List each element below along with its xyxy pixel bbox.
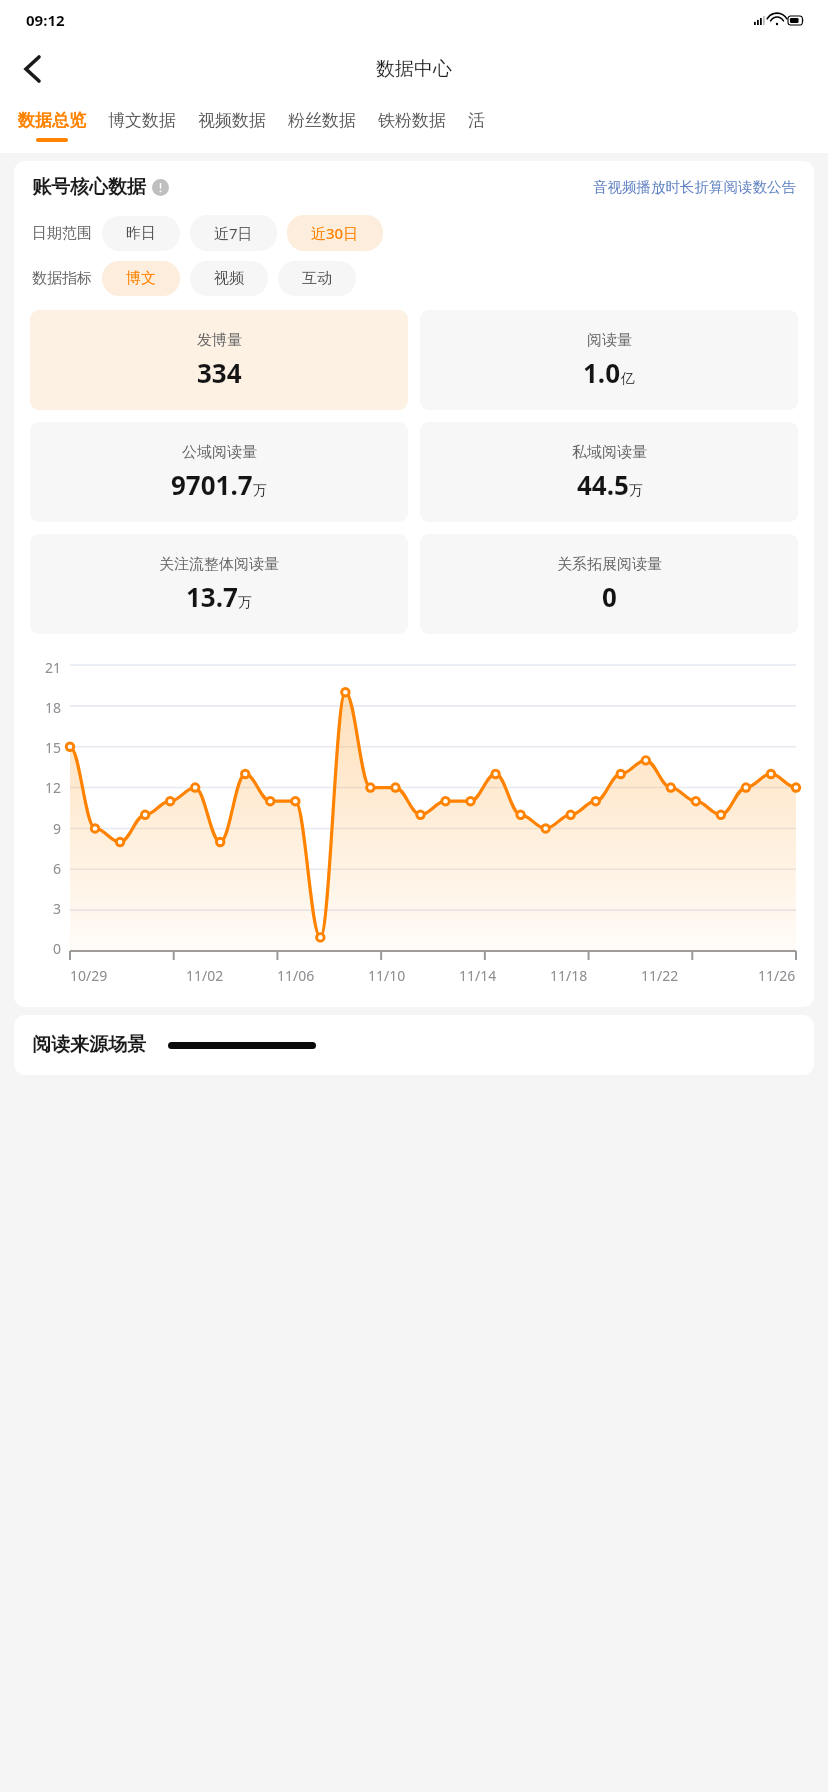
staticText: 亿 — [621, 370, 635, 388]
staticText: 阅读量 — [587, 331, 632, 350]
staticText: 日期范围 — [32, 224, 92, 243]
staticText: 9701.7 — [171, 467, 253, 502]
staticText: 发博量 — [197, 331, 242, 350]
staticText: 11/06 — [277, 966, 315, 985]
button[interactable]: 互动 — [278, 261, 356, 296]
staticText: 万 — [629, 482, 643, 500]
staticText: 视频数据 — [198, 110, 266, 131]
staticText: 11/26 — [758, 966, 796, 985]
button[interactable]: 活 — [468, 98, 485, 138]
staticText: 6 — [53, 859, 62, 878]
button[interactable]: 说明 — [152, 179, 169, 196]
staticText: 11/10 — [368, 966, 406, 985]
staticText: 博文数据 — [108, 110, 176, 131]
button[interactable]: Back — [8, 45, 56, 93]
staticText: 私域阅读量 — [572, 443, 647, 462]
button[interactable]: 近30日 — [287, 215, 383, 251]
staticText: 关注流整体阅读量 — [159, 555, 279, 574]
staticText: 18 — [45, 698, 62, 717]
button[interactable]: 阅读量 — [420, 310, 798, 410]
staticText: 公域阅读量 — [182, 443, 257, 462]
button[interactable]: 近7日 — [190, 215, 277, 251]
staticText: 0 — [602, 579, 617, 614]
staticText: 334 — [197, 355, 242, 390]
staticText: 3 — [53, 899, 62, 918]
staticText: 阅读来源场景 — [32, 1033, 146, 1057]
staticText: 11/02 — [186, 966, 224, 985]
button[interactable]: 发博量 — [30, 310, 408, 410]
staticText: 数据中心 — [376, 57, 452, 81]
staticText: 9 — [53, 819, 62, 838]
button[interactable]: 博文 — [102, 261, 180, 296]
button[interactable]: 关系拓展阅读量 — [420, 534, 798, 634]
button[interactable]: 视频 — [190, 261, 268, 296]
staticText: 11/14 — [459, 966, 497, 985]
staticText: 账号核心数据 — [32, 175, 146, 199]
staticText: 万 — [238, 594, 252, 612]
staticText: 互动 — [302, 269, 332, 288]
staticText: 44.5 — [577, 467, 629, 502]
staticText: 0 — [53, 939, 62, 958]
staticText: 粉丝数据 — [288, 110, 356, 131]
button[interactable]: 数据总览 — [18, 98, 86, 142]
button[interactable]: 关注流整体阅读量 — [30, 534, 408, 634]
staticText: 关系拓展阅读量 — [557, 555, 662, 574]
staticText: 11/22 — [641, 966, 679, 985]
staticText: 数据总览 — [18, 110, 86, 131]
staticText: 博文 — [126, 269, 156, 288]
staticText: 活 — [468, 110, 485, 131]
button[interactable]: 铁粉数据 — [378, 98, 446, 138]
button[interactable]: 昨日 — [102, 216, 180, 251]
staticText: 13.7 — [186, 579, 238, 614]
staticText: 视频 — [214, 269, 244, 288]
button[interactable]: 粉丝数据 — [288, 98, 356, 138]
staticText: 10/29 — [70, 966, 108, 985]
staticText: 1.0 — [583, 355, 621, 390]
button[interactable]: 音视频播放时长折算阅读数公告 — [593, 178, 796, 196]
staticText: 15 — [45, 738, 62, 757]
staticText: 昨日 — [126, 224, 156, 243]
staticText: 万 — [253, 482, 267, 500]
button[interactable]: 博文数据 — [108, 98, 176, 138]
staticText: 近30日 — [311, 223, 359, 243]
button[interactable]: 私域阅读量 — [420, 422, 798, 522]
staticText: 铁粉数据 — [378, 110, 446, 131]
staticText: 音视频播放时长折算阅读数公告 — [593, 178, 796, 196]
staticText: 近7日 — [214, 223, 253, 243]
staticText: 09:12 — [26, 10, 65, 30]
staticText: 数据指标 — [32, 269, 92, 288]
button[interactable]: 公域阅读量 — [30, 422, 408, 522]
staticText: 11/18 — [550, 966, 588, 985]
staticText: 21 — [45, 658, 62, 677]
button[interactable]: 视频数据 — [198, 98, 266, 138]
staticText: 12 — [45, 778, 62, 797]
